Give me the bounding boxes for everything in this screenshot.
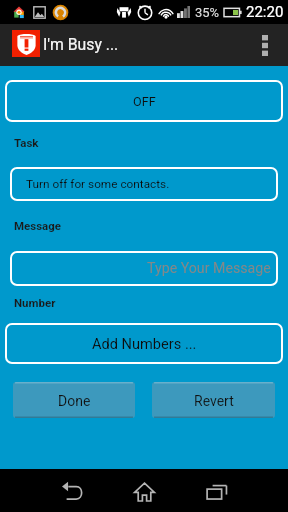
button[interactable]: Add Numbers ... (5, 323, 283, 364)
staticText: Revert (194, 393, 234, 409)
staticText: 35% (195, 5, 220, 20)
staticText: OFF (133, 94, 156, 109)
button[interactable]: More options (243, 24, 288, 66)
staticText: Task (14, 136, 39, 149)
staticText: Done (58, 393, 91, 409)
button[interactable]: Home (114, 469, 174, 512)
button[interactable]: Type Your Message (10, 251, 278, 286)
staticText: Turn off for some contacts. (26, 177, 170, 191)
button[interactable]: Done (13, 382, 135, 418)
button[interactable]: Recents (187, 469, 247, 512)
staticText: Number (14, 296, 56, 309)
staticText: Message (14, 219, 62, 232)
staticText: I'm Busy ... (43, 35, 119, 54)
button[interactable]: OFF (5, 80, 283, 122)
staticText: Type Your Message (147, 260, 271, 277)
button[interactable]: Revert (152, 382, 275, 418)
staticText: 22:20 (246, 3, 284, 21)
button[interactable]: Back (42, 469, 102, 512)
staticText: Add Numbers ... (92, 335, 197, 352)
button[interactable]: Turn off for some contacts. (10, 167, 278, 201)
